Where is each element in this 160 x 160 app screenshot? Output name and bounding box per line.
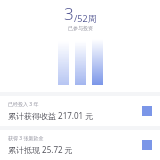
button[interactable]: 获得 3 张新款金 [0,130,160,160]
staticText: 已经投入 3 年 [8,101,39,108]
staticText: 累计抵现 25.72 元 [8,144,73,155]
staticText: 获得 3 张新款金 [8,135,44,142]
staticText: 累计获得收益 217.01 元 [8,110,94,121]
staticText: 3 [64,2,74,25]
staticText: 已参与投资 [68,25,93,31]
button[interactable]: 已经投入 3 年 [0,96,160,126]
staticText: /52周 [74,12,97,24]
